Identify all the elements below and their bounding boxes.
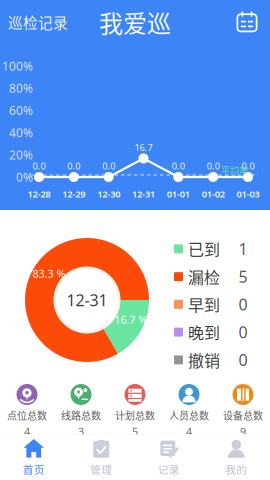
- staticText: 0.0: [102, 160, 115, 172]
- staticText: 计划总数: [115, 408, 155, 422]
- staticText: 83.3 %: [32, 266, 65, 281]
- staticText: 40%: [9, 125, 33, 140]
- staticText: 我爱巡: [99, 5, 171, 39]
- staticText: 巡检记录: [8, 11, 68, 33]
- staticText: 漏检: [188, 265, 220, 288]
- staticText: 0.0: [67, 160, 80, 172]
- staticText: 0.0: [32, 160, 45, 172]
- staticText: 管理: [90, 461, 112, 477]
- staticText: 0.0: [241, 160, 254, 172]
- button[interactable]: 线路总数: [54, 384, 108, 439]
- staticText: 平均率: [221, 163, 248, 177]
- staticText: 已到: [188, 237, 220, 260]
- staticText: 01-01: [167, 188, 190, 200]
- button[interactable]: 管理: [67, 433, 135, 480]
- button[interactable]: 首页: [0, 433, 67, 480]
- staticText: 设备总数: [223, 408, 263, 422]
- button[interactable]: 记录: [135, 433, 202, 480]
- staticText: 点位总数: [7, 408, 47, 422]
- button[interactable]: 点位总数: [0, 384, 54, 439]
- staticText: 12-31: [132, 188, 155, 200]
- staticText: 12-29: [62, 188, 85, 200]
- staticText: 12-30: [97, 188, 120, 200]
- button[interactable]: 计划总数: [108, 384, 162, 439]
- staticText: 0.0: [172, 160, 185, 172]
- staticText: 线路总数: [61, 408, 101, 422]
- staticText: 记录: [158, 461, 180, 477]
- staticText: 80%: [9, 80, 33, 96]
- staticText: 早到: [188, 293, 220, 316]
- staticText: 0%: [16, 169, 33, 185]
- staticText: 20%: [9, 147, 33, 163]
- button[interactable]: 人员总数: [162, 384, 216, 439]
- staticText: 16.7 %: [114, 312, 147, 327]
- staticText: 晚到: [188, 320, 220, 344]
- staticText: 我的: [225, 461, 247, 477]
- button[interactable]: 巡检记录: [0, 5, 68, 39]
- staticText: 01-03: [236, 188, 259, 200]
- staticText: 12-28: [27, 188, 50, 200]
- button[interactable]: Calendar: [236, 7, 270, 37]
- staticText: 0: [238, 294, 247, 315]
- staticText: 16.7: [134, 141, 152, 154]
- staticText: 0.0: [207, 160, 220, 172]
- staticText: 5: [132, 424, 138, 439]
- staticText: 4: [24, 424, 30, 439]
- button[interactable]: 我的: [202, 433, 270, 480]
- staticText: 60%: [9, 102, 33, 118]
- staticText: 4: [186, 424, 192, 439]
- staticText: 12-31: [66, 289, 107, 311]
- staticText: 人员总数: [169, 408, 209, 422]
- staticText: 1: [238, 238, 247, 259]
- staticText: 01-02: [202, 188, 225, 200]
- staticText: 3: [78, 424, 84, 439]
- staticText: 5: [238, 266, 247, 287]
- button[interactable]: 设备总数: [216, 384, 270, 439]
- staticText: 撤销: [188, 348, 220, 371]
- staticText: 9: [240, 424, 246, 439]
- staticText: 首页: [23, 461, 45, 477]
- staticText: 0: [238, 349, 247, 370]
- staticText: 100%: [2, 58, 33, 74]
- staticText: 0: [238, 321, 247, 343]
